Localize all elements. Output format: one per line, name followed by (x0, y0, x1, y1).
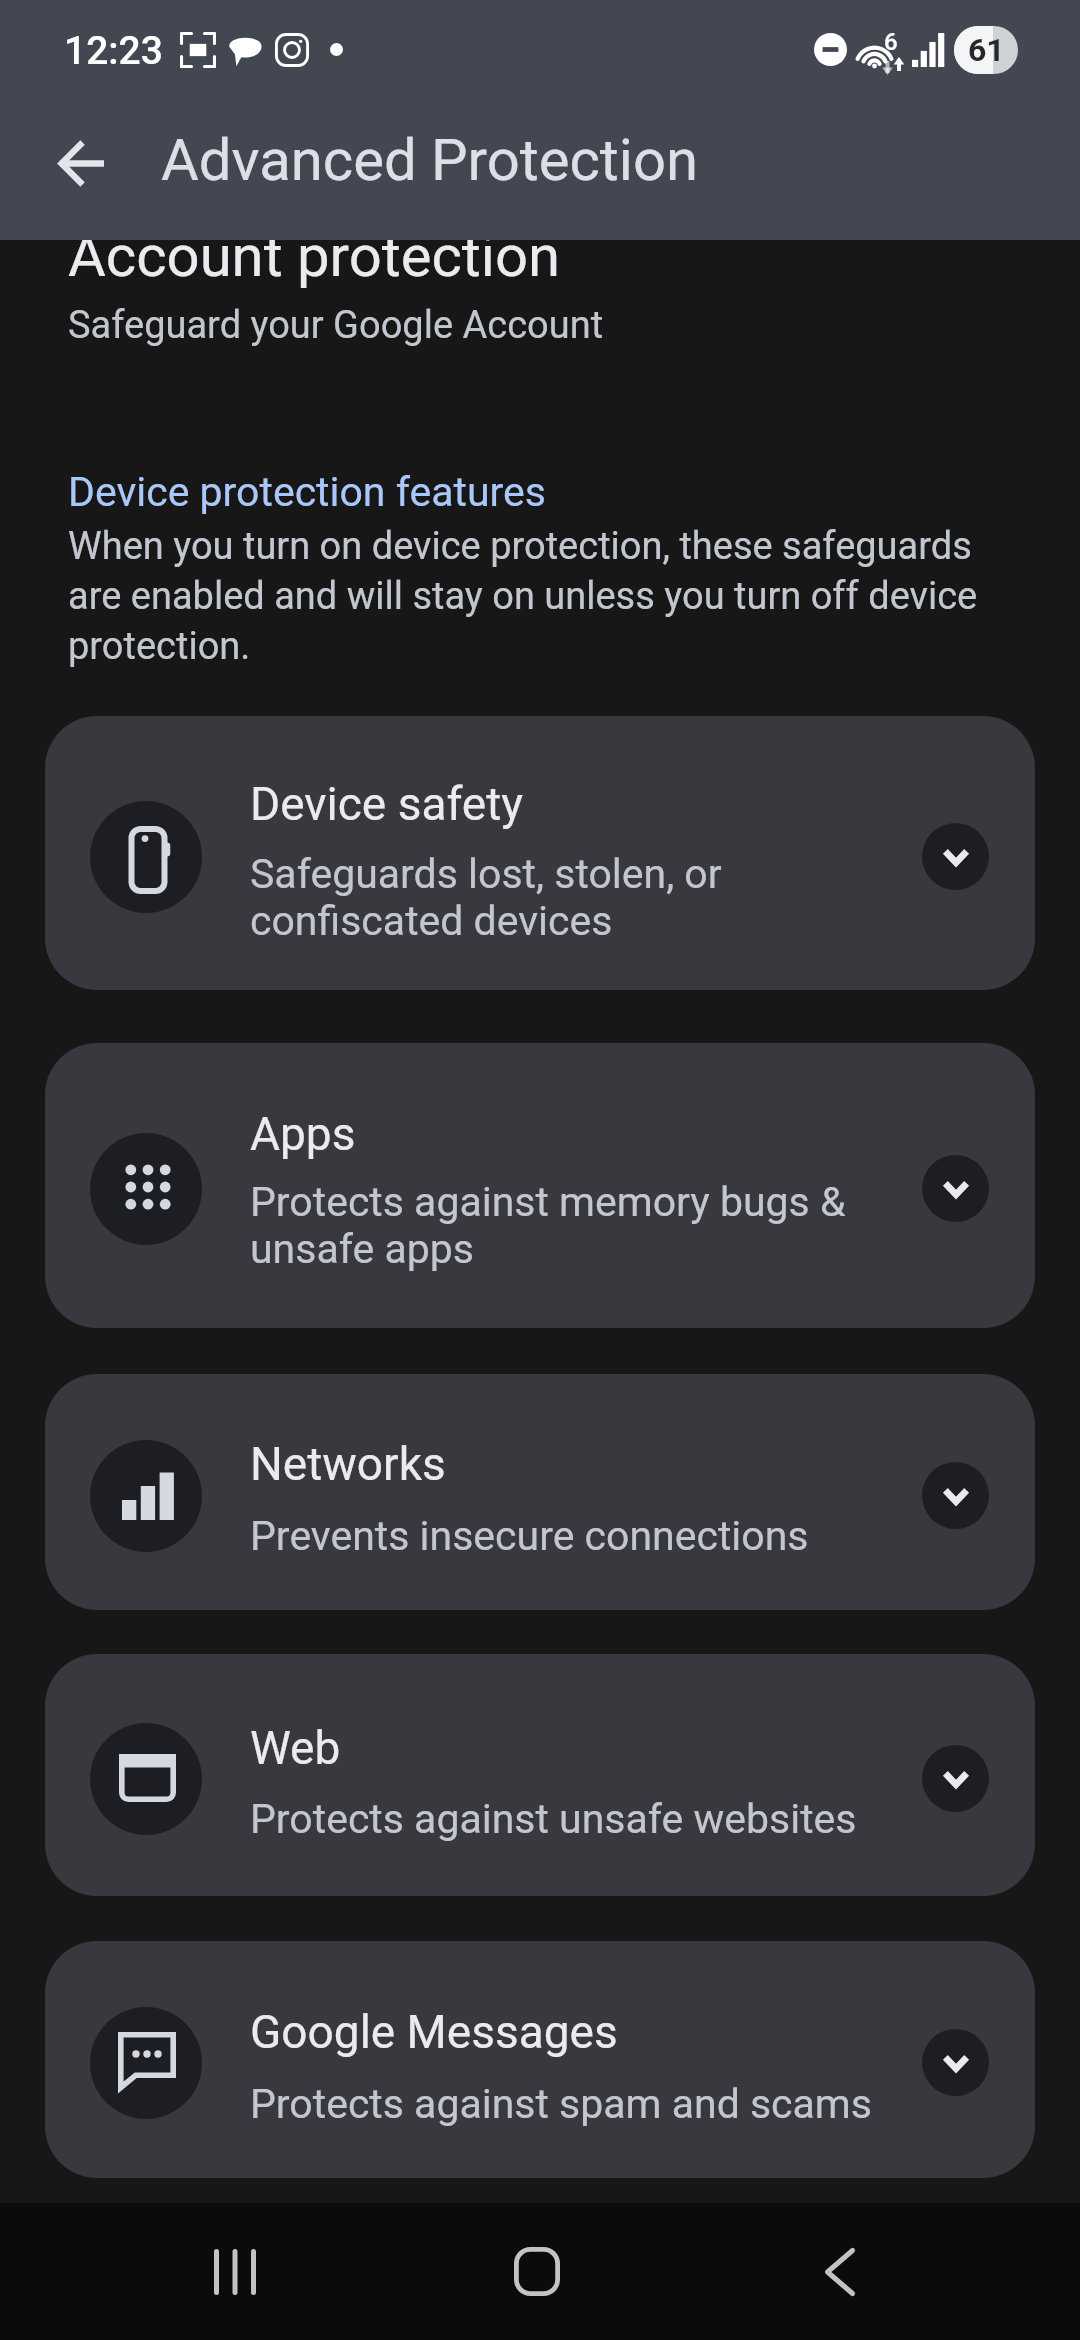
staticText: Web (250, 1720, 341, 1776)
staticText: 6 (884, 28, 898, 56)
staticText: Networks (250, 1436, 446, 1492)
staticText: 61 (968, 32, 1005, 68)
staticText: Device safety (250, 776, 524, 832)
button[interactable]: Expand Web (922, 1745, 989, 1812)
button[interactable]: Expand Google Messages (922, 2029, 989, 2096)
button[interactable]: Back (765, 2203, 915, 2340)
button[interactable]: Expand Networks (922, 1462, 989, 1529)
button[interactable]: Web (45, 1654, 1035, 1896)
button[interactable]: Expand Apps (922, 1155, 989, 1222)
staticText: Protects against unsafe websites (250, 1793, 857, 1843)
button[interactable]: Home (462, 2203, 612, 2340)
staticText: protection. (68, 623, 251, 669)
button[interactable]: Google Messages (45, 1941, 1035, 2178)
staticText: unsafe apps (250, 1223, 474, 1273)
staticText: Google Messages (250, 2004, 618, 2060)
button[interactable]: Back (40, 123, 120, 203)
staticText: When you turn on device protection, thes… (68, 523, 972, 569)
button[interactable]: Recent apps (160, 2203, 310, 2340)
button[interactable]: Networks (45, 1374, 1035, 1610)
staticText: Advanced Protection (161, 125, 699, 195)
button[interactable]: Apps (45, 1043, 1035, 1328)
staticText: confiscated devices (250, 895, 613, 945)
staticText: Protects against spam and scams (250, 2078, 872, 2128)
staticText: Device protection features (68, 466, 546, 516)
button[interactable]: Expand Device safety (922, 823, 989, 890)
staticText: Prevents insecure connections (250, 1510, 809, 1560)
button[interactable]: Device safety (45, 716, 1035, 990)
staticText: Safeguard your Google Account (68, 302, 604, 348)
staticText: are enabled and will stay on unless you … (68, 573, 978, 619)
staticText: 12:23 (64, 26, 163, 74)
staticText: Safeguards lost, stolen, or (250, 848, 722, 898)
staticText: Apps (250, 1106, 356, 1162)
staticText: Account protection (68, 221, 561, 291)
staticText: Protects against memory bugs & (250, 1176, 846, 1226)
